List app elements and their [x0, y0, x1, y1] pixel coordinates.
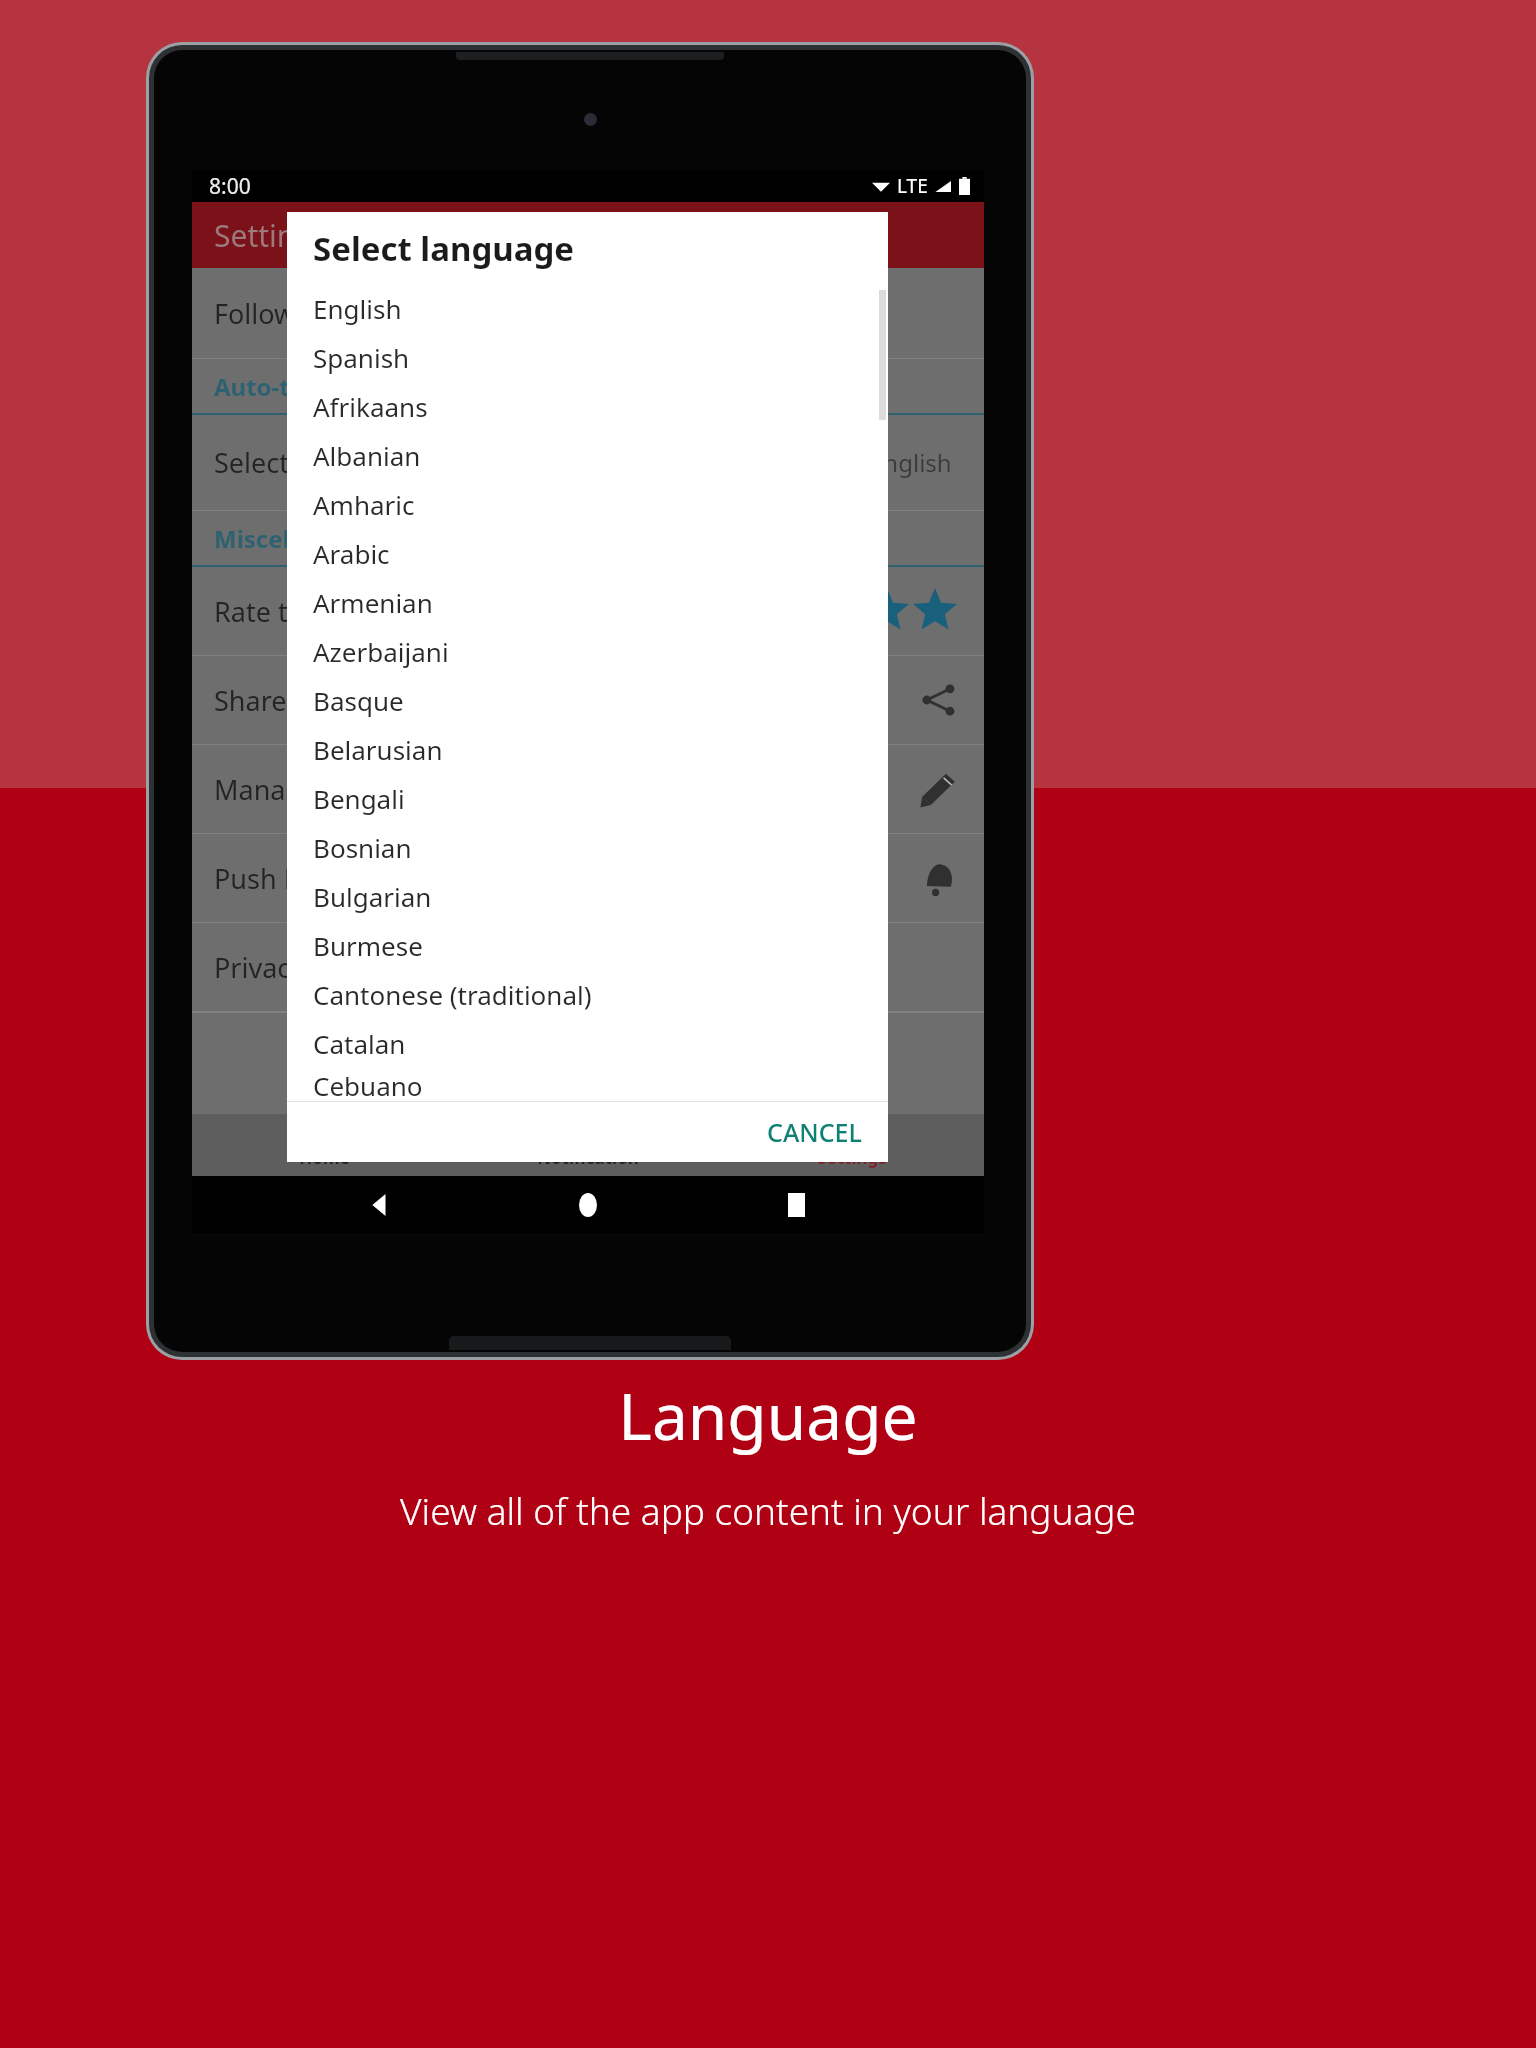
staticText: Privacy Policy [214, 949, 385, 986]
button[interactable]: Push Notifications [192, 834, 984, 922]
button[interactable]: Back [360, 1185, 400, 1225]
button[interactable]: Rate this app [192, 567, 984, 655]
staticText: Notification [537, 1146, 639, 1169]
button[interactable]: Catalan [287, 1019, 888, 1068]
staticText: Home [299, 1146, 350, 1169]
staticText: Azerbaijani [313, 634, 449, 669]
staticText: Bulgarian [313, 879, 432, 914]
staticText: Settings [817, 1146, 887, 1169]
button[interactable]: Amharic [287, 480, 888, 529]
staticText: Amharic [313, 487, 415, 522]
staticText: Cebuano [313, 1068, 423, 1101]
staticText: Follow schedule [214, 295, 416, 332]
staticText: Arabic [313, 536, 390, 571]
staticText: Select language [313, 226, 575, 271]
staticText: Bengali [313, 781, 405, 816]
staticText: Basque [313, 683, 404, 718]
staticText: Rate this app [214, 593, 380, 630]
button[interactable]: Manage Account [192, 745, 984, 833]
button[interactable]: Albanian [287, 431, 888, 480]
staticText: Push Notifications [214, 860, 445, 897]
button[interactable]: Follow schedule [192, 268, 984, 358]
button[interactable]: Azerbaijani [287, 627, 888, 676]
button[interactable]: Arabic [287, 529, 888, 578]
button[interactable]: Cantonese (traditional) [287, 970, 888, 1019]
button[interactable]: Notification [456, 1114, 720, 1176]
staticText: Manage Account [214, 771, 427, 808]
staticText: Bosnian [313, 830, 412, 865]
staticText: Albanian [313, 438, 421, 473]
button[interactable]: Bulgarian [287, 872, 888, 921]
staticText: English [313, 291, 402, 326]
button[interactable]: Burmese [287, 921, 888, 970]
staticText: 8:00 [209, 172, 251, 201]
staticText: Settings [214, 215, 329, 256]
button[interactable]: Bosnian [287, 823, 888, 872]
button[interactable]: Share this app [192, 656, 984, 744]
button[interactable]: Spanish [287, 333, 888, 382]
button[interactable]: Bengali [287, 774, 888, 823]
staticText: Burmese [313, 928, 423, 963]
staticText: Miscellaneous [214, 522, 384, 555]
staticText: Afrikaans [313, 389, 428, 424]
button[interactable]: Home [568, 1185, 608, 1225]
staticText: Select language [214, 444, 416, 481]
button[interactable]: English [287, 284, 888, 333]
button[interactable]: Armenian [287, 578, 888, 627]
staticText: CANCEL [767, 1115, 862, 1149]
button[interactable]: Home [192, 1114, 456, 1176]
staticText: Language [618, 1372, 918, 1459]
staticText: Belarusian [313, 732, 443, 767]
button[interactable]: Settings [720, 1114, 984, 1176]
staticText: View all of the app content in your lang… [400, 1485, 1136, 1535]
button[interactable]: Afrikaans [287, 382, 888, 431]
button[interactable]: Basque [287, 676, 888, 725]
button[interactable]: Recents [776, 1185, 816, 1225]
staticText: English [870, 446, 952, 479]
staticText: LTE [897, 173, 928, 199]
button[interactable]: CANCEL [751, 1105, 878, 1159]
button[interactable]: Select language [192, 415, 984, 510]
staticText: Armenian [313, 585, 433, 620]
staticText: Catalan [313, 1026, 406, 1061]
button[interactable]: Cebuano [287, 1068, 888, 1101]
button[interactable]: Belarusian [287, 725, 888, 774]
button[interactable]: Privacy Policy [192, 923, 984, 1011]
staticText: Auto-translate [214, 370, 389, 403]
staticText: Spanish [313, 340, 410, 375]
staticText: Cantonese (traditional) [313, 977, 592, 1012]
staticText: Share this app [214, 682, 396, 719]
